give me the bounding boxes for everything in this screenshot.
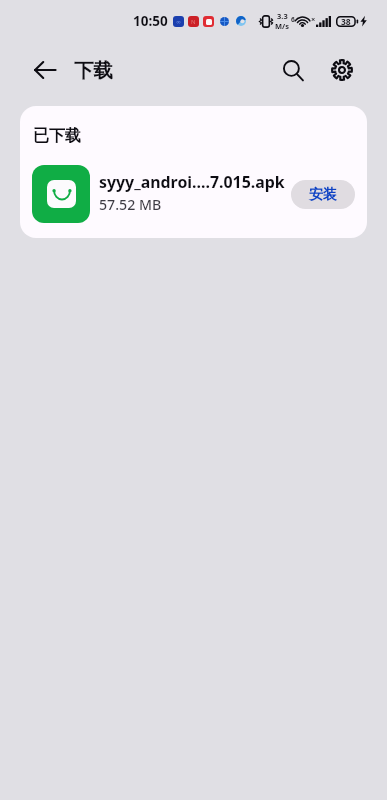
button[interactable]: 安装 [291, 180, 355, 209]
staticText: 38 [341, 16, 351, 27]
staticText: 6 [291, 15, 295, 24]
staticText: × [311, 14, 316, 24]
staticText: 已下载 [33, 126, 81, 146]
staticText: 57.52 MB [99, 195, 162, 214]
staticText: 3.3 [277, 11, 288, 21]
button[interactable]: Back [23, 48, 67, 92]
button[interactable]: syyy_androi....7.015.apk [20, 163, 367, 238]
button[interactable]: Search [271, 48, 315, 92]
staticText: syyy_androi....7.015.apk [99, 171, 285, 193]
staticText: ∞ [176, 18, 181, 25]
button[interactable]: Settings [320, 48, 364, 92]
staticText: N [191, 18, 196, 26]
staticText: 下载 [74, 58, 113, 83]
staticText: 安装 [309, 186, 337, 204]
staticText: 10:50 [133, 12, 168, 30]
staticText: M/s [275, 21, 289, 31]
